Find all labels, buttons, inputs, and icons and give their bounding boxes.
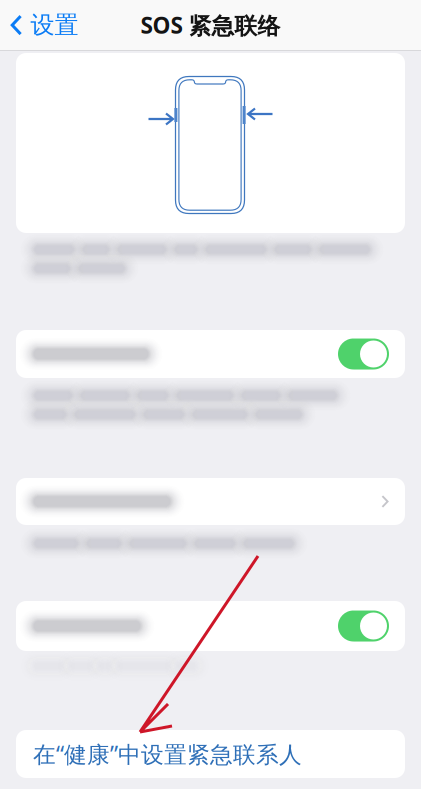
button[interactable] xyxy=(16,330,405,378)
button[interactable]: 设置 xyxy=(0,0,90,50)
button[interactable] xyxy=(16,478,405,525)
staticText: 在“健康”中设置紧急联系人 xyxy=(33,739,302,769)
staticText: 设置 xyxy=(30,10,78,40)
button[interactable]: 在“健康”中设置紧急联系人 xyxy=(16,730,405,778)
button[interactable] xyxy=(16,601,405,651)
staticText: SOS 紧急联络 xyxy=(140,10,280,40)
